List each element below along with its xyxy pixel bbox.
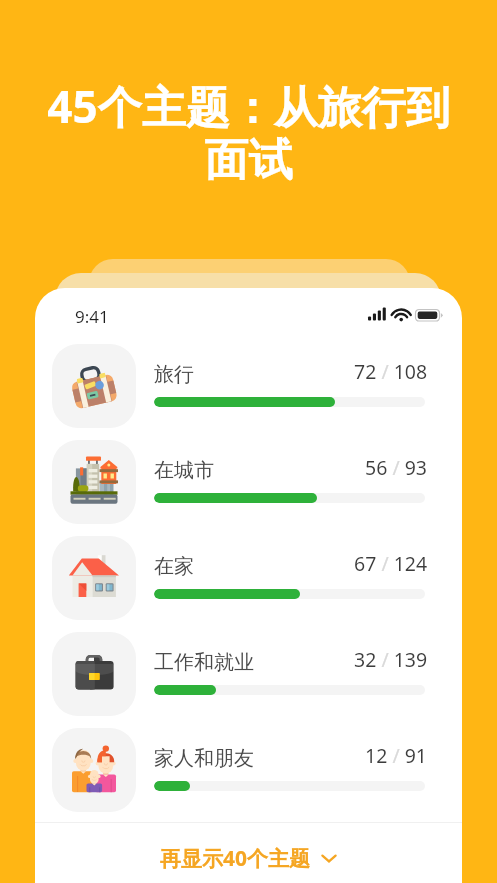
staticText: 56 / 93 [365,454,428,481]
staticText: 45个主题：从旅行到面试 [40,76,457,188]
button[interactable]: 工作和就业 [35,632,462,716]
staticText: 32 / 139 [354,646,428,673]
staticText: 工作和就业 [154,650,254,675]
staticText: 在家 [154,554,194,579]
button[interactable]: 旅行 [35,344,462,428]
button[interactable]: 家人和朋友 [35,728,462,812]
staticText: 旅行 [154,362,194,387]
staticText: 12 / 91 [365,742,428,769]
staticText: 9:41 [75,305,109,328]
button[interactable]: 在城市 [35,440,462,524]
staticText: 再显示40个主题 [160,844,311,873]
button[interactable]: 在家 [35,536,462,620]
staticText: 67 / 124 [354,550,428,577]
staticText: 家人和朋友 [154,746,254,771]
staticText: 72 / 108 [354,358,428,385]
button[interactable]: 再显示40个主题 [35,828,462,883]
staticText: 在城市 [154,458,214,483]
